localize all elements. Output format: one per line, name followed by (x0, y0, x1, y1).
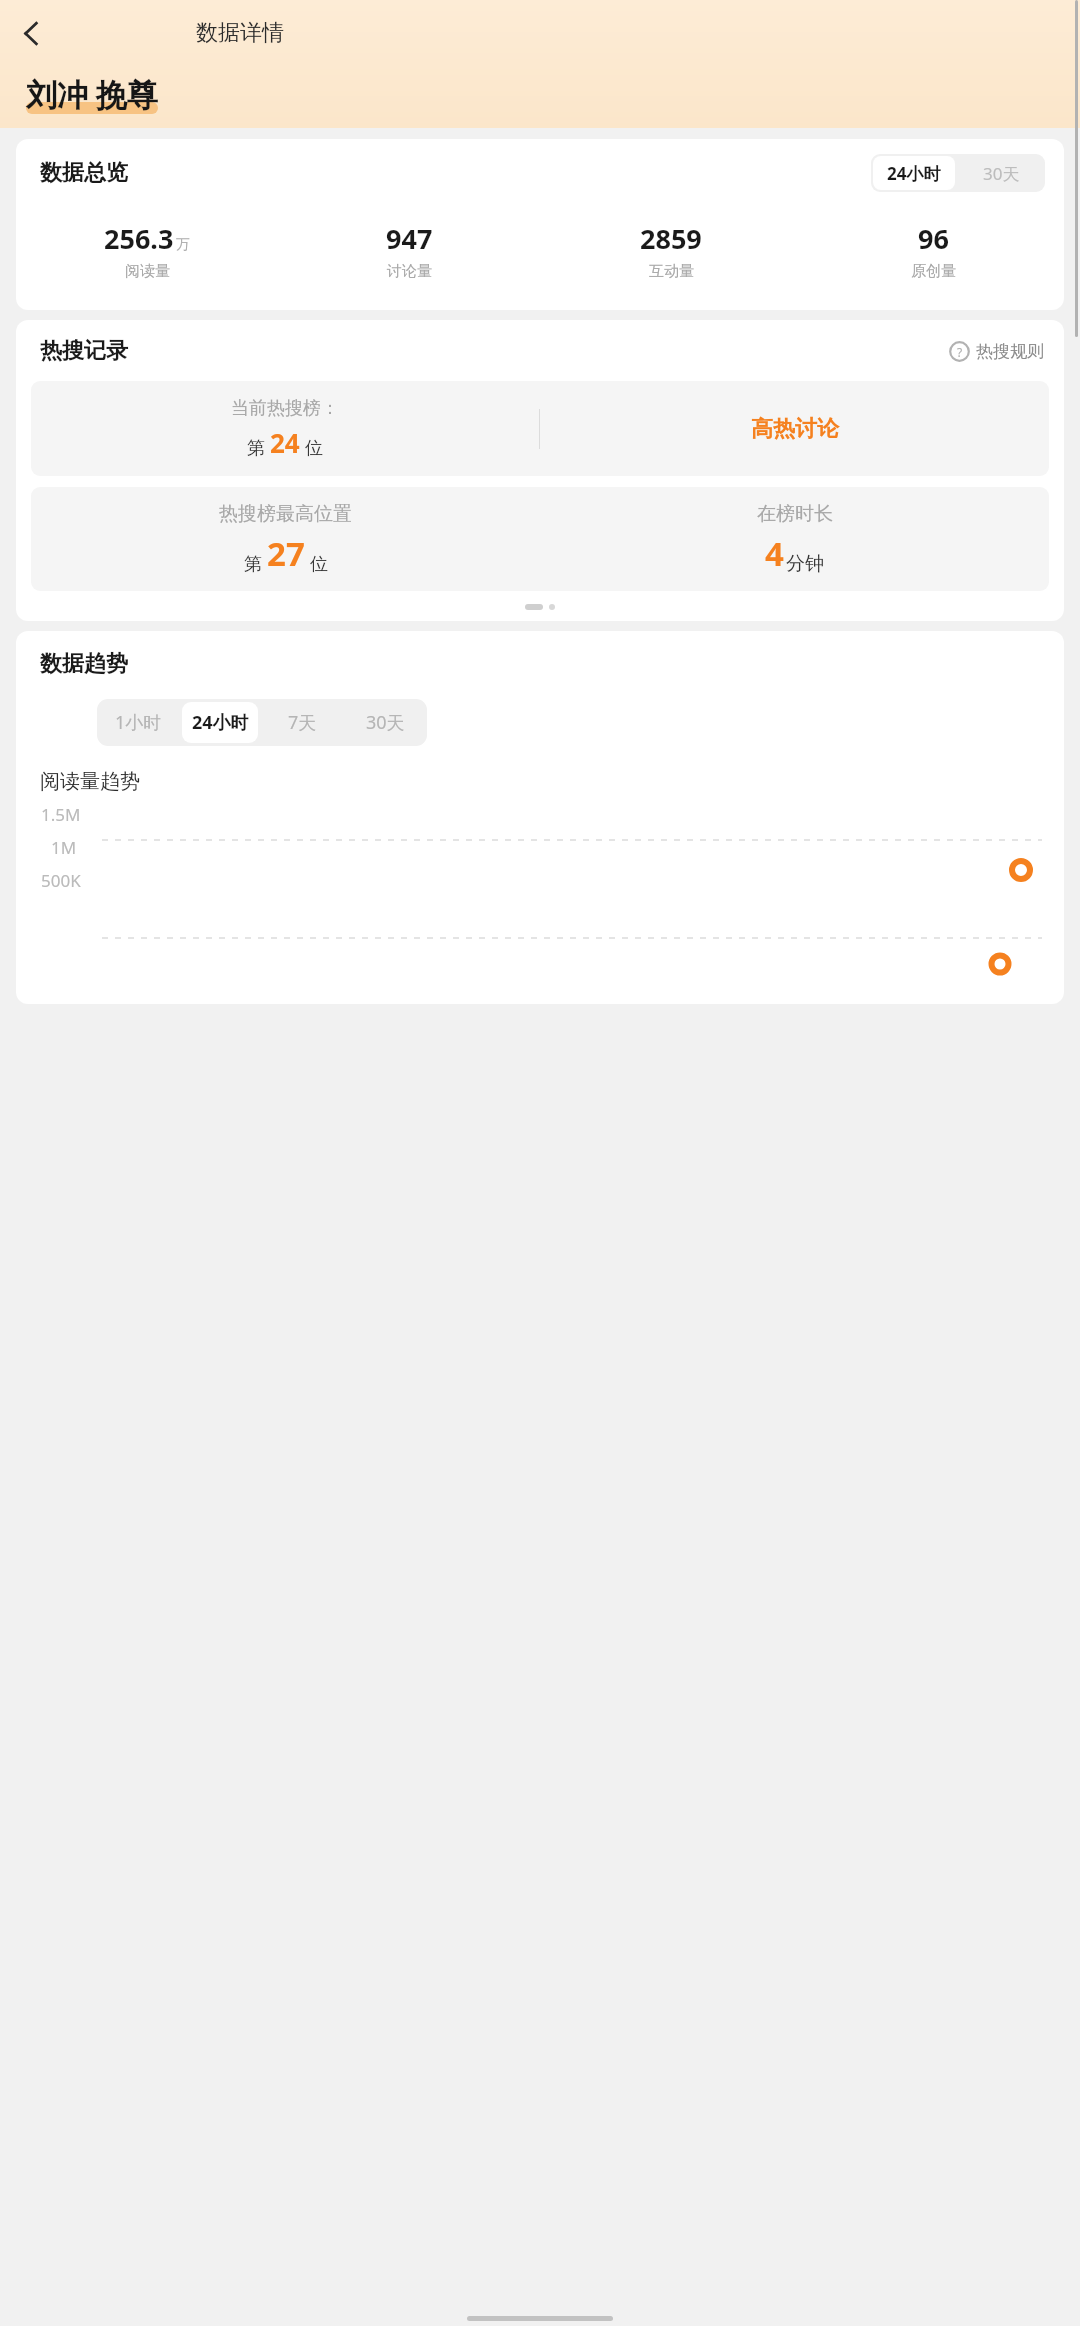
staticText: 1M (51, 836, 77, 859)
button[interactable]: 24小时 (873, 156, 955, 190)
staticText: 位 (310, 553, 328, 576)
staticText: 24小时 (192, 710, 249, 735)
staticText: 原创量 (911, 262, 956, 281)
staticText: 阅读量趋势 (40, 769, 140, 794)
staticText: 互动量 (649, 262, 694, 281)
staticText: 256.3 (104, 220, 174, 257)
staticText: 2859 (640, 220, 702, 257)
staticText: 96 (918, 220, 949, 257)
staticText: 30天 (366, 710, 405, 735)
staticText: 热搜记录 (40, 337, 128, 365)
staticText: 当前热搜榜： (231, 397, 339, 420)
staticText: 数据总览 (40, 159, 128, 187)
staticText: 第 (247, 437, 265, 460)
staticText: 高热讨论 (751, 415, 839, 443)
staticText: 刘冲 挽尊 (26, 73, 159, 115)
button[interactable]: ? (949, 341, 1044, 362)
staticText: 7天 (288, 710, 317, 735)
staticText: 1.5M (41, 803, 81, 826)
staticText: 数据详情 (196, 19, 284, 47)
button[interactable]: 1小时 (100, 702, 176, 743)
staticText: 热搜榜最高位置 (219, 502, 352, 526)
staticText: 阅读量 (125, 262, 170, 281)
staticText: 讨论量 (387, 262, 432, 281)
button[interactable]: Back (6, 8, 56, 58)
staticText: 24小时 (887, 162, 941, 185)
button[interactable]: 24小时 (182, 702, 258, 743)
staticText: 热搜规则 (976, 341, 1044, 362)
button[interactable]: 30天 (957, 154, 1045, 192)
staticText: 4 (765, 531, 784, 576)
staticText: 947 (386, 220, 433, 257)
button[interactable]: 30天 (347, 702, 424, 743)
staticText: 30天 (983, 162, 1020, 185)
button[interactable]: 7天 (264, 702, 341, 743)
staticText: 27 (267, 531, 305, 576)
staticText: 24 (270, 425, 300, 460)
staticText: 分钟 (786, 552, 824, 576)
staticText: 500K (41, 869, 81, 892)
staticText: 在榜时长 (757, 502, 833, 526)
staticText: ? (957, 344, 963, 360)
staticText: 万 (176, 236, 190, 254)
staticText: 数据趋势 (40, 650, 128, 678)
staticText: 1小时 (115, 710, 162, 735)
staticText: 位 (305, 437, 323, 460)
staticText: 第 (244, 553, 262, 576)
